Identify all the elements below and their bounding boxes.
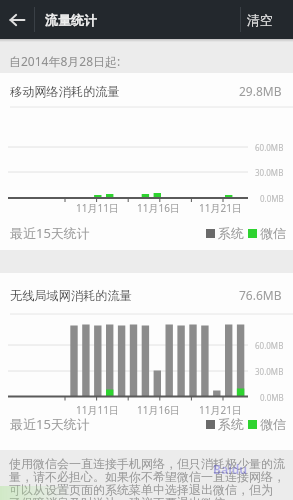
staticText: 60.0MB (255, 142, 284, 153)
button[interactable]: 清空 (227, 0, 293, 39)
staticText: 11月11日 (76, 403, 119, 417)
staticText: 微信 (260, 225, 286, 241)
staticText: 系统 (218, 416, 244, 432)
staticText: 移动网络消耗的流量 (10, 84, 120, 99)
button[interactable] (0, 0, 34, 39)
staticText: 30.0MB (255, 167, 284, 178)
staticText: 最近15天统计 (10, 415, 90, 433)
staticText: 自2014年8月28日起: (9, 53, 121, 69)
staticText: 使用微信会一直连接手机网络，但只消耗极少量的流 量，请不必担心。如果你不希望微信… (9, 456, 285, 500)
staticText: 0.0MB (260, 392, 284, 403)
staticText: 清空 (247, 12, 273, 28)
staticText: 11月11日 (76, 201, 119, 215)
staticText: 30.0MB (255, 366, 284, 377)
staticText: 11月16日 (137, 403, 180, 417)
staticText: 流量统计 (45, 12, 97, 28)
staticText: 系统 (218, 225, 244, 241)
staticText: 微信 (260, 416, 286, 432)
staticText: 60.0MB (255, 340, 284, 351)
staticText: 11月16日 (137, 201, 180, 215)
staticText: 最近15天统计 (10, 224, 90, 242)
staticText: 29.8MB (239, 83, 282, 99)
staticText: Baidu (213, 461, 248, 477)
staticText: 76.6MB (239, 287, 282, 303)
staticText: 0.0MB (260, 193, 284, 204)
staticText: 无线局域网消耗的流量 (10, 288, 132, 303)
staticText: 11月21日 (199, 201, 242, 215)
staticText: 11月21日 (199, 403, 242, 417)
